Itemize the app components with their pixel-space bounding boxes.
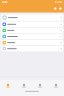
button[interactable]: Home (0, 83, 16, 88)
button[interactable] (1, 40, 63, 45)
button[interactable] (1, 22, 63, 27)
button[interactable]: Settings (48, 83, 64, 88)
button[interactable] (1, 34, 63, 39)
button[interactable]: Search (54, 7, 57, 10)
button[interactable] (1, 46, 63, 51)
button[interactable] (1, 28, 63, 33)
button[interactable]: Library (32, 83, 48, 88)
button[interactable]: Browse (16, 83, 32, 88)
button[interactable]: Compose (59, 7, 62, 10)
button[interactable] (1, 14, 63, 21)
